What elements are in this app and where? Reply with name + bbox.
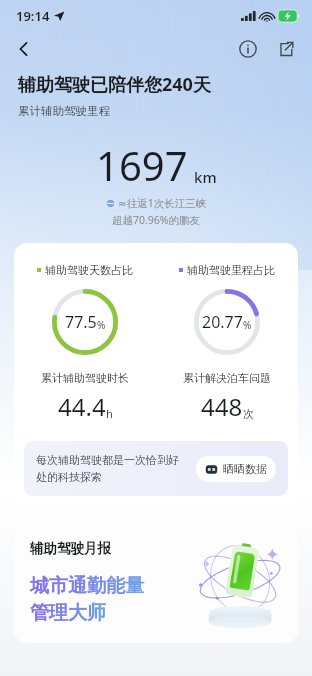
staticText: 19:14 — [16, 7, 50, 25]
button[interactable]: 辅助驾驶月报 — [14, 523, 298, 643]
staticText: 20.77 — [202, 311, 243, 333]
staticText: 次 — [243, 407, 254, 421]
staticText: 城市通勤能量 — [30, 574, 144, 598]
staticText: 辅助驾驶天数占比 — [45, 263, 133, 277]
staticText: ≈往返1次长江三峡 — [118, 196, 207, 210]
staticText: 辅助驾驶已陪伴您240天 — [18, 72, 211, 97]
staticText: % — [97, 318, 106, 332]
staticText: 累计解决泊车问题 — [183, 371, 271, 385]
button[interactable]: Share — [270, 33, 302, 65]
button[interactable]: Info — [232, 33, 264, 65]
staticText: % — [243, 318, 252, 332]
staticText: 77.5 — [65, 311, 97, 333]
staticText: 累计辅助驾驶时长 — [41, 371, 129, 385]
staticText: 超越70.96%的鹏友 — [18, 213, 294, 227]
staticText: 448 — [201, 390, 243, 423]
staticText: 44.4 — [58, 390, 106, 423]
staticText: 辅助驾驶里程占比 — [187, 263, 275, 277]
button[interactable]: Back — [6, 32, 42, 66]
staticText: h — [106, 406, 113, 421]
staticText: 每次辅助驾驶都是一次恰到好处的科技探索 — [36, 453, 188, 484]
staticText: 晒晒数据 — [223, 462, 267, 476]
staticText: 辅助驾驶月报 — [30, 540, 111, 557]
button[interactable]: 晒晒数据 — [196, 456, 276, 482]
staticText: 1697 — [96, 138, 188, 192]
staticText: km — [194, 167, 217, 187]
staticText: 管理大师 — [30, 601, 106, 625]
staticText: 累计辅助驾驶里程 — [18, 104, 110, 118]
